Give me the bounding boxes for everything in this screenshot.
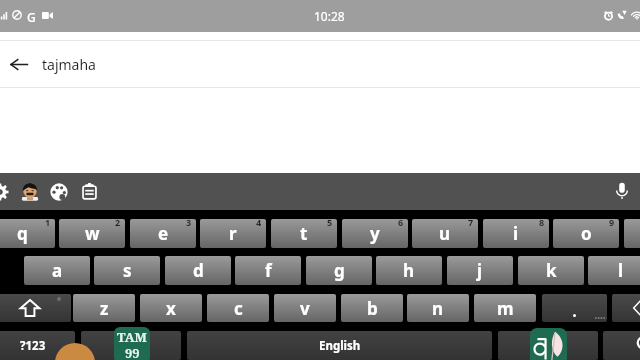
staticText: i: [513, 222, 519, 245]
button[interactable]: w: [59, 219, 125, 248]
button[interactable]: i: [483, 219, 549, 248]
button[interactable]: y: [342, 219, 408, 248]
button[interactable]: [81, 331, 181, 360]
button[interactable]: q: [0, 219, 55, 248]
staticText: q: [17, 222, 28, 245]
button[interactable]: o: [553, 219, 619, 248]
staticText: g: [334, 259, 345, 282]
button[interactable]: [542, 294, 607, 322]
staticText: d: [193, 259, 204, 282]
staticText: 5: [327, 219, 333, 228]
staticText: G: [27, 9, 36, 25]
staticText: 99: [125, 344, 140, 360]
staticText: n: [432, 297, 444, 320]
staticText: h: [403, 259, 415, 282]
staticText: t: [300, 222, 308, 245]
staticText: k: [546, 259, 557, 282]
button[interactable]: u: [412, 219, 478, 248]
button[interactable]: English: [187, 331, 492, 360]
staticText: x: [166, 297, 176, 320]
staticText: e: [158, 222, 169, 245]
staticText: j: [477, 259, 483, 282]
button[interactable]: s: [94, 256, 160, 285]
button[interactable]: m: [474, 294, 536, 322]
staticText: s: [123, 259, 132, 282]
button[interactable]: e: [130, 219, 196, 248]
button[interactable]: Themes: [50, 183, 68, 201]
staticText: m: [497, 297, 514, 320]
button[interactable]: x: [140, 294, 202, 322]
staticText: o: [581, 222, 592, 245]
button[interactable]: a: [24, 256, 90, 285]
button[interactable]: z: [73, 294, 135, 322]
button[interactable]: Settings: [0, 183, 9, 201]
button[interactable]: [498, 331, 598, 360]
button[interactable]: ?123: [0, 331, 75, 360]
button[interactable]: j: [447, 256, 513, 285]
button[interactable]: t: [271, 219, 337, 248]
staticText: w: [85, 222, 100, 245]
button[interactable]: Clipboard: [81, 183, 98, 200]
staticText: 3: [186, 219, 192, 228]
button[interactable]: n: [407, 294, 469, 322]
button[interactable]: Back: [5, 51, 32, 78]
staticText: u: [439, 222, 451, 245]
staticText: 7: [468, 219, 474, 228]
staticText: l: [618, 259, 624, 282]
staticText: 8: [539, 219, 545, 228]
staticText: 9: [609, 219, 615, 228]
staticText: a: [52, 259, 63, 282]
button[interactable]: d: [165, 256, 231, 285]
button[interactable]: Emoji: [21, 182, 39, 200]
staticText: 2: [115, 219, 121, 228]
button[interactable]: Voice input: [615, 182, 629, 199]
staticText: TAM: [117, 328, 147, 346]
staticText: c: [234, 297, 243, 320]
staticText: y: [370, 222, 380, 245]
button[interactable]: [0, 294, 71, 322]
button[interactable]: h: [376, 256, 442, 285]
staticText: 10:28: [314, 8, 345, 24]
staticText: z: [100, 297, 109, 320]
staticText: 6: [398, 219, 404, 228]
staticText: tajmaha: [42, 55, 96, 74]
staticText: 1: [45, 219, 51, 228]
button[interactable]: v: [274, 294, 336, 322]
button[interactable]: b: [341, 294, 403, 322]
button[interactable]: r: [200, 219, 266, 248]
button[interactable]: p: [624, 219, 640, 248]
button[interactable]: [603, 331, 640, 360]
button[interactable]: k: [518, 256, 584, 285]
staticText: f: [265, 259, 272, 282]
staticText: 4: [256, 219, 262, 228]
staticText: b: [367, 297, 378, 320]
button[interactable]: g: [306, 256, 372, 285]
staticText: English: [319, 338, 361, 354]
staticText: r: [229, 222, 237, 245]
staticText: v: [300, 297, 310, 320]
button[interactable]: f: [235, 256, 301, 285]
button[interactable]: [612, 294, 640, 322]
staticText: ?123: [20, 338, 46, 354]
button[interactable]: l: [588, 256, 640, 285]
button[interactable]: c: [207, 294, 269, 322]
